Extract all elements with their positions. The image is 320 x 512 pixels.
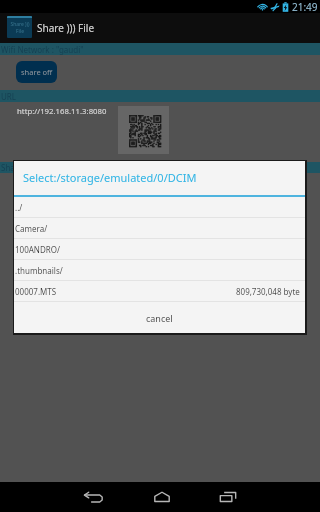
staticText: URL bbox=[1, 91, 17, 102]
staticText: .thumbnails/ bbox=[15, 265, 63, 276]
staticText: 21:49 bbox=[292, 0, 318, 13]
button[interactable]: Camera/ bbox=[14, 218, 305, 239]
staticText: Share ))) File bbox=[37, 21, 95, 35]
staticText: Camera/ bbox=[15, 223, 48, 234]
staticText: 00007.MTS bbox=[15, 286, 57, 297]
staticText: Select:/storage/emulated/0/DCIM bbox=[23, 170, 197, 185]
staticText: Share ))) File bbox=[10, 21, 30, 34]
button[interactable]: 00007.MTS bbox=[14, 281, 305, 302]
staticText: share off bbox=[21, 67, 53, 77]
staticText: ../ bbox=[15, 202, 23, 213]
button[interactable]: cancel bbox=[14, 302, 305, 333]
button[interactable]: Home bbox=[140, 482, 184, 512]
staticText: Wifi Network : "gaudi" bbox=[1, 44, 84, 55]
staticText: 809,730,048 byte bbox=[236, 286, 300, 297]
staticText: Share File bbox=[1, 162, 38, 173]
staticText: http://192.168.11.3:8080 bbox=[17, 106, 107, 117]
button[interactable]: Recent apps bbox=[206, 482, 250, 512]
button[interactable]: App icon bbox=[7, 16, 32, 38]
button[interactable]: share off bbox=[16, 61, 57, 83]
button[interactable]: ../ bbox=[14, 197, 305, 218]
staticText: 100ANDRO/ bbox=[15, 244, 60, 255]
button[interactable]: Back bbox=[72, 482, 116, 512]
staticText: cancel bbox=[146, 312, 173, 324]
button[interactable]: .thumbnails/ bbox=[14, 260, 305, 281]
button[interactable]: 100ANDRO/ bbox=[14, 239, 305, 260]
